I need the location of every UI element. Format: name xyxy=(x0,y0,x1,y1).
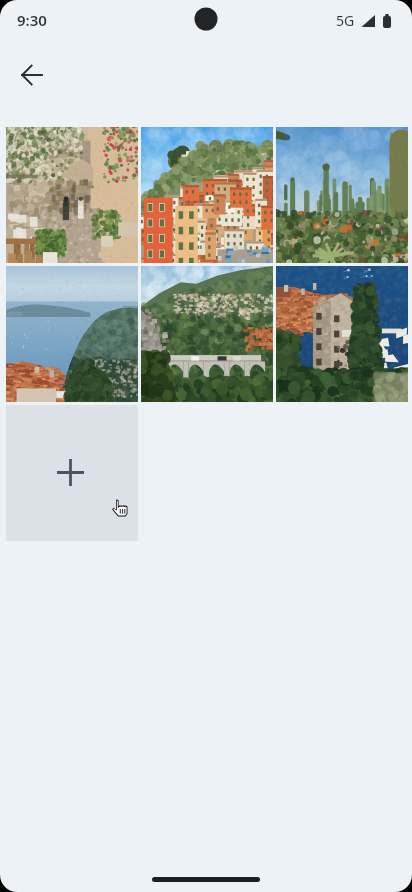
button[interactable]: Photo 5 xyxy=(141,266,273,402)
button[interactable]: Back xyxy=(8,51,56,99)
button[interactable]: Photo 2 xyxy=(141,127,273,263)
staticText: 5G xyxy=(336,11,355,30)
button[interactable]: Photo 3 xyxy=(276,127,408,263)
button[interactable]: Photo 6 xyxy=(276,266,408,402)
button[interactable]: Add photo xyxy=(6,405,138,541)
staticText: 9:30 xyxy=(17,10,47,30)
button[interactable]: Photo 1 xyxy=(6,127,138,263)
button[interactable]: Photo 4 xyxy=(6,266,138,402)
